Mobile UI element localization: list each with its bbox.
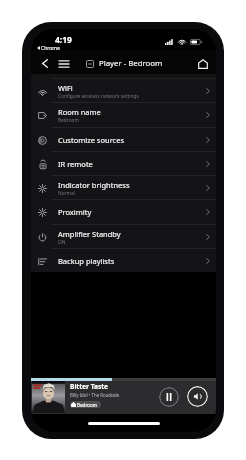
- button[interactable]: Backup playlists: [31, 249, 216, 273]
- staticText: Billy Idol • The Roadside: [70, 392, 120, 398]
- staticText: IR remote: [58, 159, 93, 169]
- staticText: Room name: [58, 107, 101, 117]
- staticText: Indicator brightness: [58, 180, 130, 190]
- button[interactable]: Proximity: [31, 200, 216, 224]
- staticText: 4:19: [55, 34, 72, 46]
- button[interactable]: Back: [38, 53, 52, 74]
- staticText: Customize sources: [58, 135, 124, 145]
- staticText: Bedroom: [58, 117, 79, 124]
- staticText: Amplifier Standby: [58, 229, 121, 239]
- staticText: ON: [58, 239, 66, 246]
- button[interactable]: Indicator brightness: [31, 176, 216, 200]
- button[interactable]: Bedroom: [70, 401, 101, 408]
- staticText: Backup playlists: [58, 256, 115, 266]
- staticText: Configure wireless network settings: [58, 93, 139, 100]
- staticText: Bitter Taste: [70, 382, 109, 391]
- staticText: WiFi: [58, 83, 73, 93]
- button[interactable]: Pause: [159, 387, 179, 407]
- staticText: Bedroom: [77, 402, 98, 408]
- staticText: Chrome: [41, 45, 60, 50]
- button[interactable]: Customize sources: [31, 128, 216, 152]
- staticText: Normal: [58, 190, 75, 197]
- staticText: Player - Bedroom: [99, 58, 163, 69]
- staticText: Proximity: [58, 207, 92, 217]
- button[interactable]: Menu: [57, 53, 71, 74]
- button[interactable]: Home: [193, 53, 213, 74]
- button[interactable]: WiFi: [31, 79, 216, 103]
- button[interactable]: Volume: [187, 386, 208, 407]
- button[interactable]: IR remote: [31, 152, 216, 176]
- button[interactable]: Amplifier Standby: [31, 225, 216, 249]
- button[interactable]: Room name: [31, 103, 216, 127]
